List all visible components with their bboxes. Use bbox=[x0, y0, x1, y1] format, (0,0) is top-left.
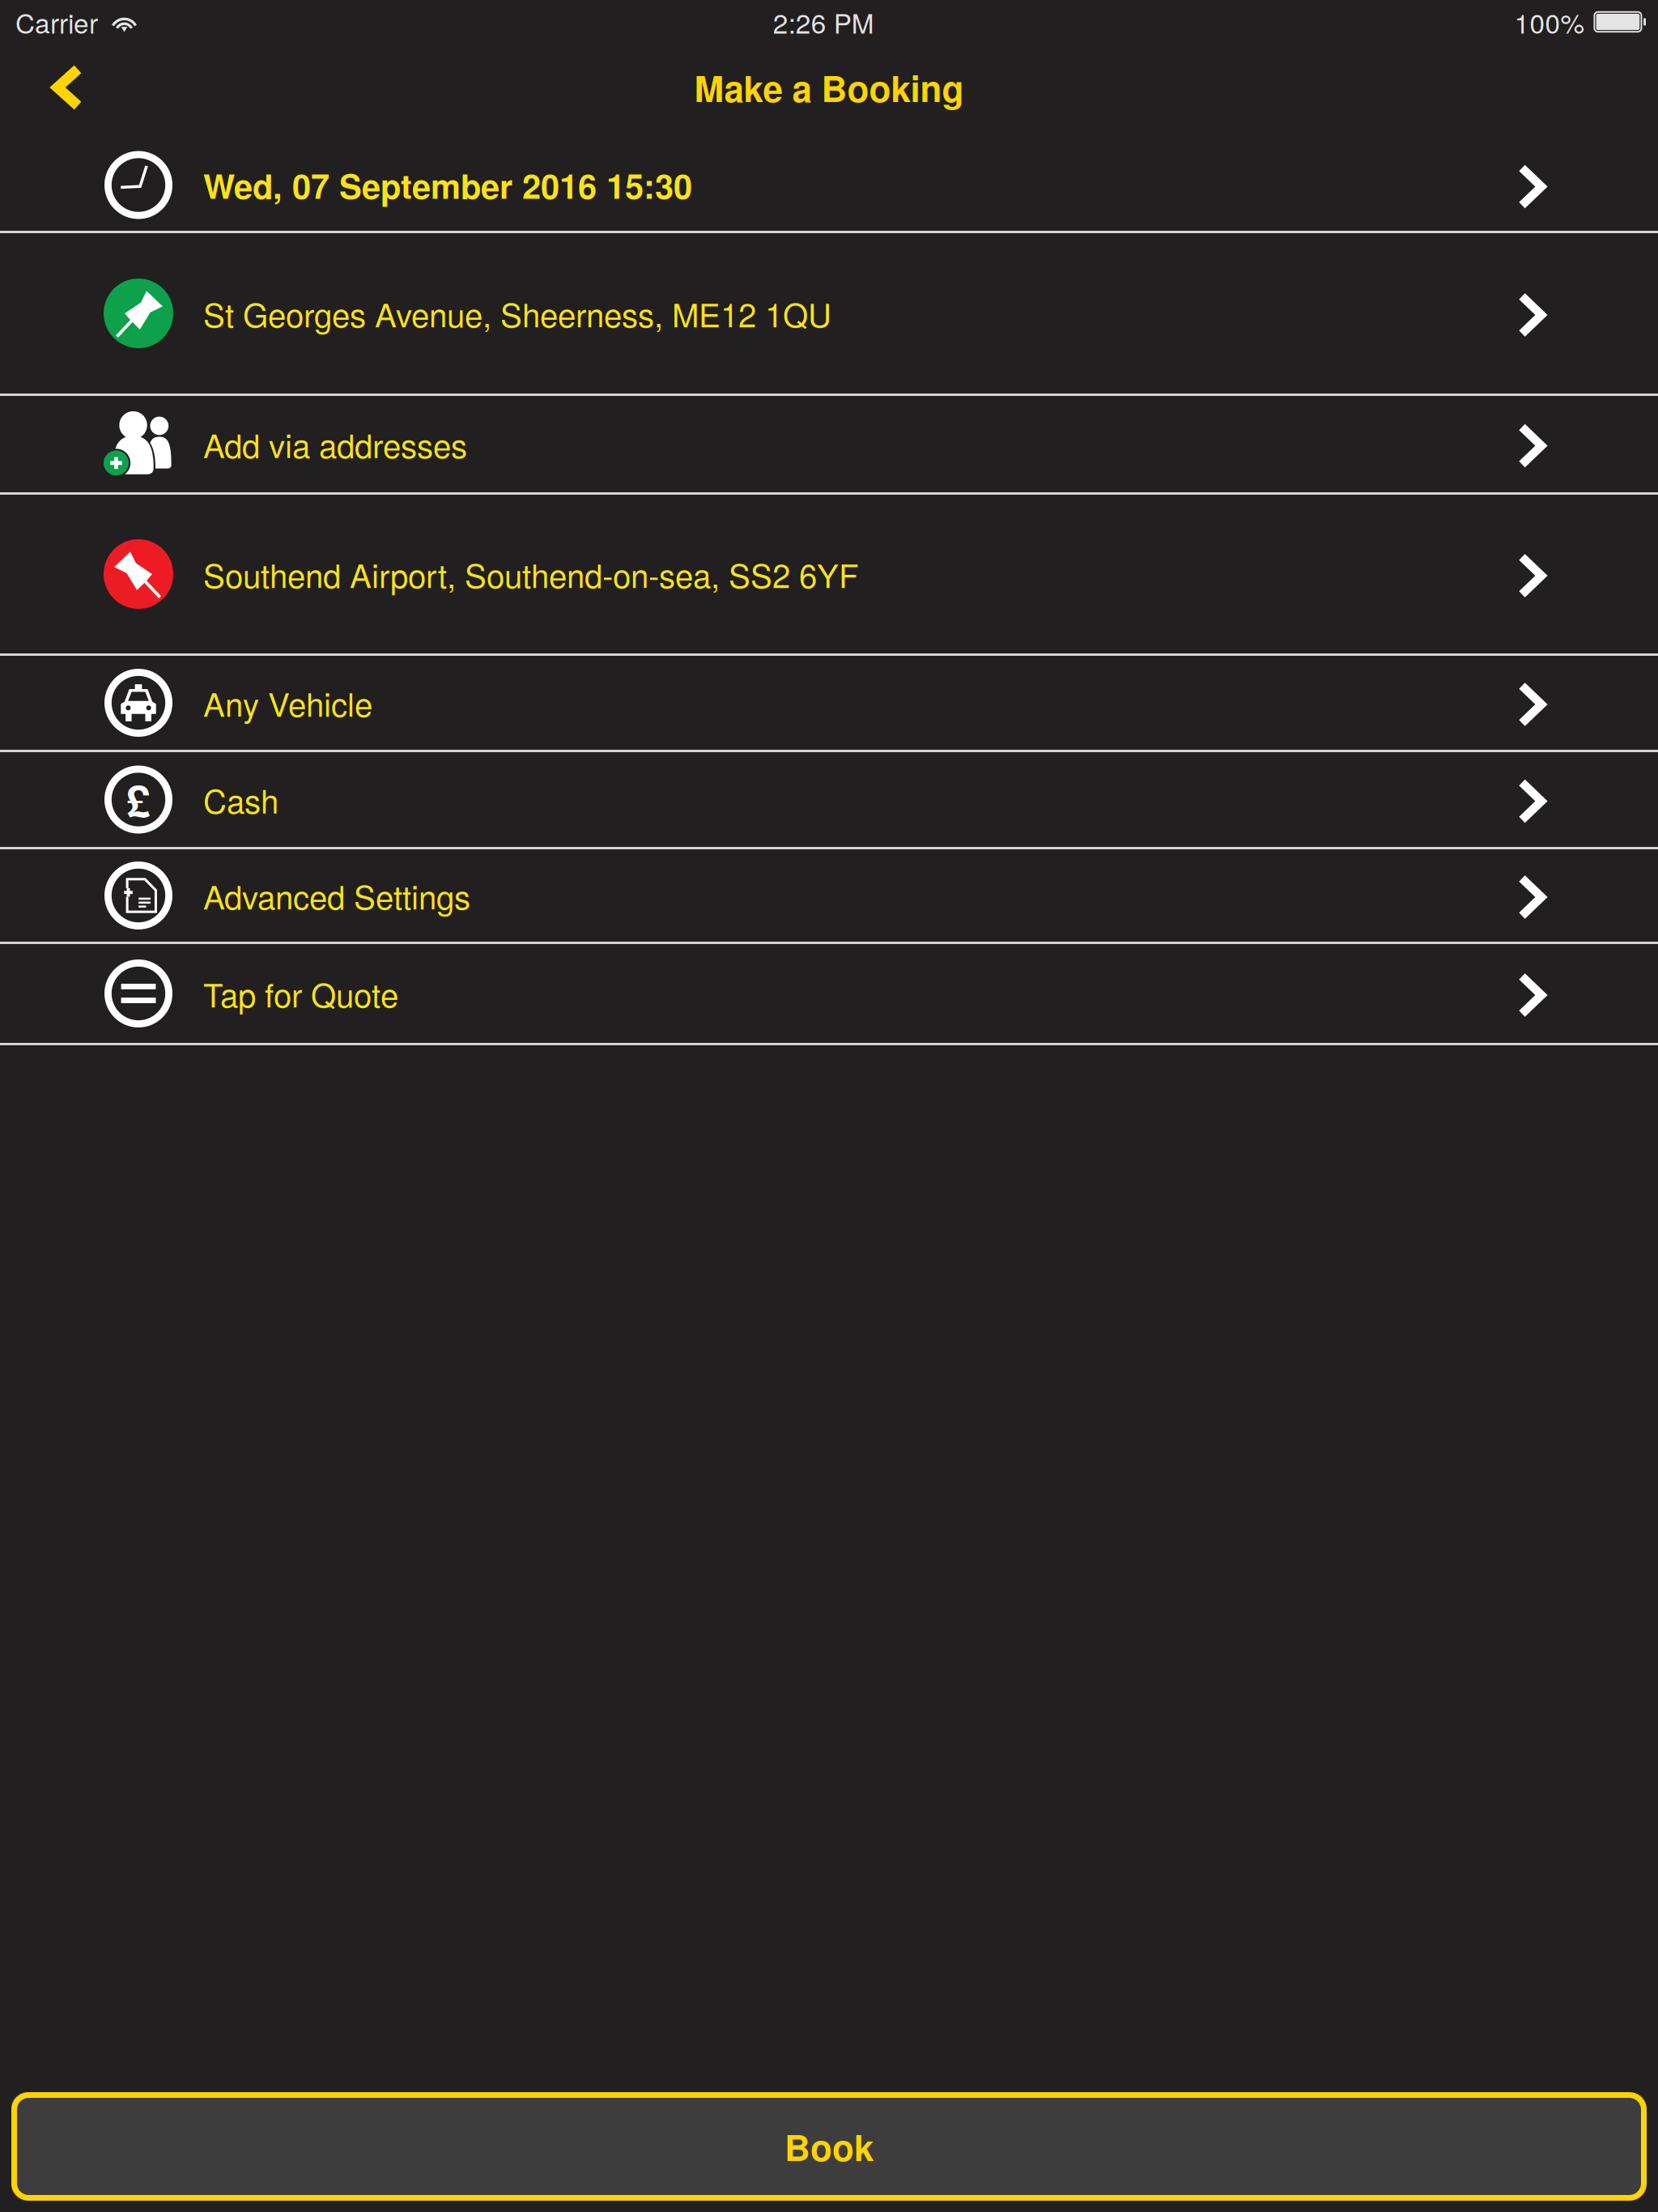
staticText: Book bbox=[784, 2121, 874, 2172]
staticText: Tap for Quote bbox=[203, 970, 398, 1017]
button[interactable]: Any Vehicle bbox=[0, 656, 1658, 750]
button[interactable]: Back bbox=[0, 53, 118, 130]
staticText: 100% bbox=[1514, 3, 1585, 41]
staticText: Make a Booking bbox=[694, 62, 964, 113]
staticText: Advanced Settings bbox=[203, 872, 470, 919]
staticText: Add via addresses bbox=[203, 421, 467, 467]
button[interactable]: Wed, 07 September 2016 15:30 bbox=[0, 139, 1658, 231]
button[interactable]: Advanced Settings bbox=[0, 849, 1658, 942]
staticText: Carrier bbox=[15, 3, 98, 41]
button[interactable]: Tap for Quote bbox=[0, 944, 1658, 1043]
button[interactable]: Add via addresses bbox=[0, 396, 1658, 492]
button[interactable]: Book bbox=[0, 2092, 1658, 2212]
staticText: Cash bbox=[203, 776, 278, 823]
staticText: 2:26 PM bbox=[773, 3, 874, 41]
button[interactable]: St Georges Avenue, Sheerness, ME12 1QU bbox=[0, 233, 1658, 393]
button[interactable]: Southend Airport, Southend-on-sea, SS2 6… bbox=[0, 495, 1658, 653]
staticText: Southend Airport, Southend-on-sea, SS2 6… bbox=[203, 551, 859, 597]
staticText: Any Vehicle bbox=[203, 680, 372, 726]
staticText: Wed, 07 September 2016 15:30 bbox=[203, 161, 692, 209]
staticText: St Georges Avenue, Sheerness, ME12 1QU bbox=[203, 290, 831, 337]
button[interactable]: £ bbox=[0, 752, 1658, 847]
